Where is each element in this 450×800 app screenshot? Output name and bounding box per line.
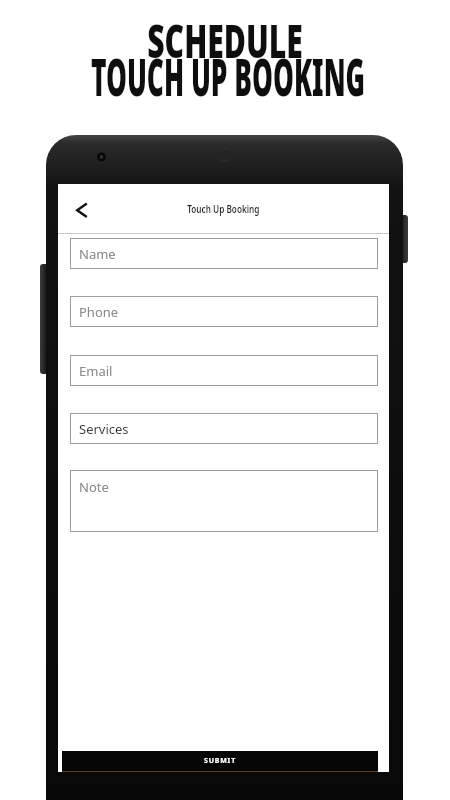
button[interactable]: Phone [70, 296, 378, 327]
staticText: Services [79, 420, 129, 438]
button[interactable]: Name [70, 238, 378, 269]
staticText: Note [79, 478, 109, 496]
button[interactable]: Note [70, 470, 378, 532]
button[interactable] [74, 203, 90, 218]
staticText: SCHEDULE [0, 9, 450, 72]
button[interactable]: Email [70, 355, 378, 386]
staticText: SUBMIT [204, 756, 236, 766]
staticText: Name [79, 245, 116, 263]
staticText: Touch Up Booking [187, 202, 260, 216]
staticText: TOUCH UP BOOKING [0, 41, 450, 110]
button[interactable]: Services [70, 413, 378, 444]
staticText: Phone [79, 303, 119, 321]
button[interactable]: SUBMIT [62, 751, 378, 771]
staticText: Email [79, 362, 113, 380]
